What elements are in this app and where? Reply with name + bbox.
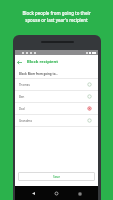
button[interactable]: Home [52,189,61,198]
button[interactable]: Ben [15,91,98,102]
staticText: Save [53,175,60,179]
staticText: Thomas [19,83,30,87]
button[interactable]: Save [18,172,95,181]
staticText: Block Mom from going to... [19,72,58,76]
staticText: Grandma [19,119,32,123]
staticText: Ben [19,95,25,99]
button[interactable]: Back [16,59,23,66]
staticText: Dad [19,107,25,111]
button[interactable]: Dad [15,103,98,114]
staticText: Block recipient [27,59,59,65]
staticText: Block people from going to their spouse … [22,10,91,23]
button[interactable]: Back [29,189,38,198]
button[interactable]: Thomas [15,79,98,90]
button[interactable]: Grandma [15,115,98,126]
button[interactable]: Recent apps [75,189,84,198]
